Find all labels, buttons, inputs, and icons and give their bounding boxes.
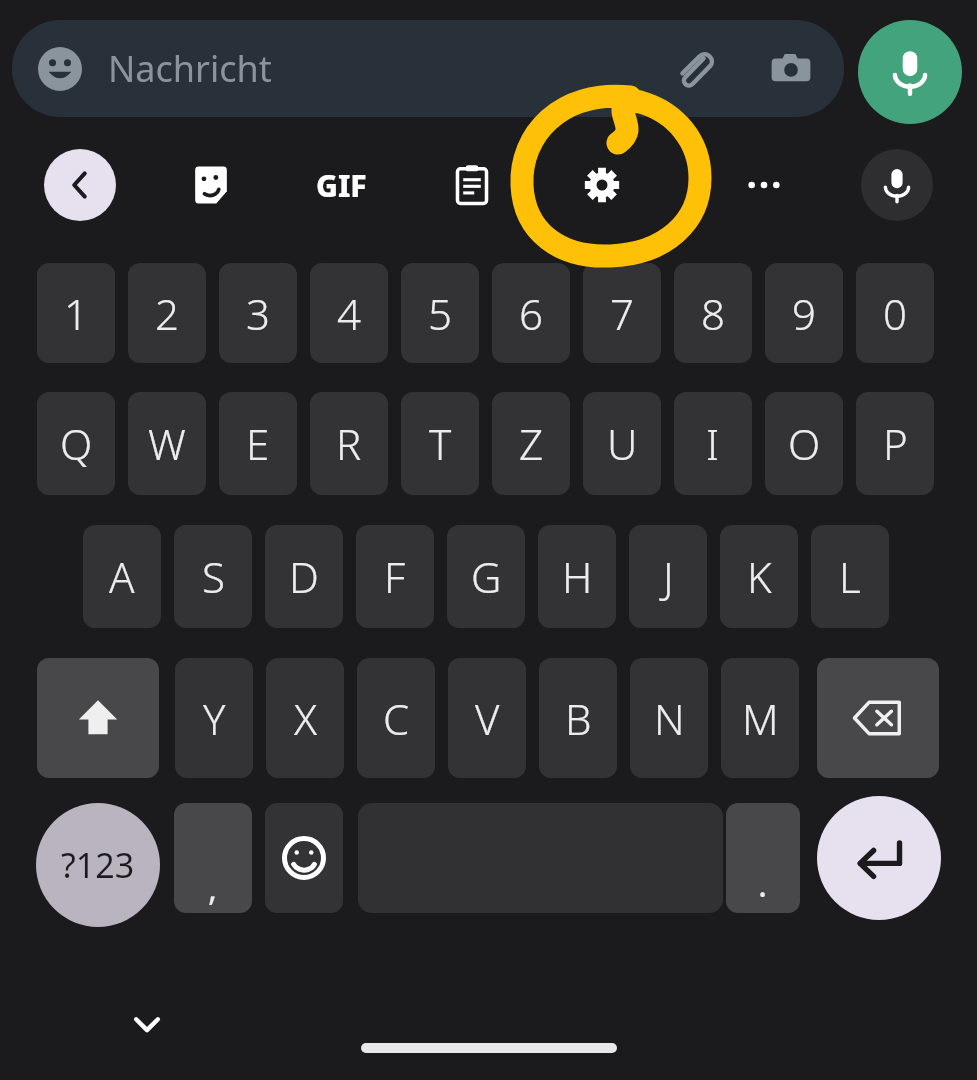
button[interactable]: D [265,525,343,628]
button[interactable]: 5 [401,263,479,363]
button[interactable]: Z [492,392,570,495]
staticText: E [246,415,270,472]
staticText: Z [519,415,544,472]
button[interactable]: U [583,392,661,495]
button[interactable]: Enter [817,796,941,920]
button[interactable]: , [174,803,252,913]
staticText: 0 [883,285,907,342]
staticText: L [839,548,861,605]
staticText: N [654,690,685,747]
button[interactable]: Voice input [861,149,933,221]
button[interactable]: 0 [856,263,934,363]
button[interactable]: I [674,392,752,495]
staticText: , [208,865,218,911]
button[interactable]: 3 [219,263,297,363]
staticText: X [294,690,317,747]
button[interactable]: Hide keyboard [118,995,176,1053]
staticText: W [148,415,186,472]
staticText: Y [203,690,226,747]
staticText: 2 [155,285,179,342]
staticText: O [788,415,821,472]
staticText: Q [60,415,93,472]
button[interactable]: Y [175,658,253,778]
button[interactable]: J [629,525,707,628]
button[interactable]: B [539,658,617,778]
button[interactable]: T [401,392,479,495]
staticText: D [289,548,319,605]
staticText: C [383,690,410,747]
staticText: G [471,548,502,605]
button[interactable]: Settings [566,149,638,221]
button[interactable]: O [765,392,843,495]
button[interactable]: Stickers [175,149,247,221]
button[interactable]: 1 [37,263,115,363]
button[interactable]: S [174,525,252,628]
button[interactable]: V [448,658,526,778]
staticText: V [475,690,500,747]
staticText: 3 [246,285,270,342]
staticText: Nachricht [108,44,272,93]
button[interactable]: L [811,525,889,628]
staticText: K [747,548,772,605]
button[interactable]: A [83,525,161,628]
button[interactable]: X [266,658,344,778]
staticText: S [202,548,225,605]
button[interactable]: K [720,525,798,628]
button[interactable]: Clipboard [436,149,508,221]
button[interactable]: Backspace [817,658,939,778]
button[interactable]: More [728,149,800,221]
staticText: F [384,548,406,605]
staticText: 4 [337,285,361,342]
button[interactable]: 8 [674,263,752,363]
button[interactable]: Attach [662,38,724,100]
staticText: 1 [64,285,88,342]
staticText: GIF [316,165,367,206]
button[interactable]: . [726,803,800,913]
button[interactable]: R [310,392,388,495]
button[interactable]: E [219,392,297,495]
staticText: . [758,861,768,907]
staticText: 6 [519,285,543,342]
button[interactable]: Camera [760,38,822,100]
staticText: 9 [792,285,816,342]
button[interactable]: W [128,392,206,495]
button[interactable]: Emoji [12,20,844,117]
button[interactable]: C [357,658,435,778]
staticText: 8 [701,285,725,342]
button[interactable]: 4 [310,263,388,363]
button[interactable]: M [721,658,799,778]
staticText: J [663,548,674,605]
button[interactable]: P [856,392,934,495]
staticText: P [883,415,908,472]
staticText: 5 [428,285,452,342]
staticText: 7 [610,285,634,342]
button[interactable]: GIF [305,149,377,221]
staticText: U [607,415,638,472]
button[interactable]: Q [37,392,115,495]
button[interactable]: Shift [37,658,159,778]
staticText: B [565,690,592,747]
button[interactable]: ?123 [36,803,160,927]
staticText: ?123 [61,842,135,888]
button[interactable]: H [538,525,616,628]
button[interactable]: 2 [128,263,206,363]
button[interactable]: 9 [765,263,843,363]
staticText: I [706,415,720,472]
button[interactable]: Back [44,149,116,221]
staticText: A [109,548,135,605]
staticText: H [562,548,593,605]
button[interactable]: Voice message [858,20,962,124]
button[interactable]: 7 [583,263,661,363]
staticText: T [429,415,452,472]
button[interactable]: Emoji [265,803,343,913]
button[interactable]: F [356,525,434,628]
staticText: M [742,690,779,747]
button[interactable]: G [447,525,525,628]
staticText: R [336,415,362,472]
button[interactable]: N [630,658,708,778]
button[interactable]: Emoji [34,43,86,95]
button[interactable]: 6 [492,263,570,363]
